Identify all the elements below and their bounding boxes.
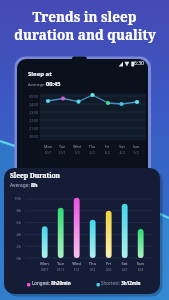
staticText: 3/2 — [101, 267, 116, 272]
staticText: Fri — [101, 261, 116, 267]
staticText: 5/2 — [133, 267, 148, 272]
staticText: 6h — [8, 220, 21, 225]
staticText: Wed — [70, 144, 84, 149]
staticText: 6:30 — [134, 60, 144, 67]
staticText: 24:00 — [23, 102, 38, 107]
button[interactable]: Sleep Duration — [4, 168, 160, 294]
staticText: 0h — [8, 256, 21, 261]
staticText: 8h — [8, 208, 21, 213]
staticText: Thu — [85, 144, 99, 149]
staticText: 4/2 — [117, 267, 132, 272]
staticText: 1/2 — [69, 267, 84, 272]
staticText: duration and quality — [14, 26, 156, 44]
staticText: 20:00 — [23, 134, 38, 139]
staticText: Fri — [100, 144, 114, 149]
button[interactable]: 6:30 — [17, 59, 148, 271]
staticText: 8h — [31, 181, 38, 188]
staticText: 23:00 — [23, 110, 38, 115]
staticText: 10h — [8, 196, 21, 201]
staticText: Sleep at — [28, 70, 52, 78]
staticText: Average: — [10, 182, 30, 189]
staticText: Sun — [133, 261, 148, 267]
staticText: 31/1 — [53, 267, 68, 272]
staticText: 5/2 — [129, 150, 143, 155]
staticText: Sleep Duration — [10, 171, 60, 180]
staticText: 2/2 — [85, 267, 100, 272]
staticText: Average: — [28, 81, 46, 87]
staticText: Thu — [85, 261, 100, 267]
staticText: 3/2 — [100, 150, 114, 155]
staticText: 22:00 — [23, 118, 38, 123]
staticText: Tue — [53, 261, 68, 267]
staticText: 2h — [8, 244, 21, 249]
staticText: Sat — [117, 261, 132, 267]
staticText: Tue — [55, 144, 69, 149]
staticText: 30/1 — [41, 150, 55, 155]
staticText: Wed — [69, 261, 84, 267]
staticText: Sun — [129, 144, 143, 149]
staticText: Trends in sleep — [32, 8, 137, 26]
staticText: 31/1 — [55, 150, 69, 155]
staticText: Sat — [115, 144, 129, 149]
staticText: 21:00 — [23, 126, 38, 131]
staticText: Mon — [41, 144, 55, 149]
staticText: Mon — [37, 261, 52, 267]
staticText: 2/2 — [85, 150, 99, 155]
staticText: 00:45 — [46, 80, 61, 88]
staticText: 30/1 — [37, 267, 52, 272]
staticText: Shortest: 3h12min — [101, 280, 141, 286]
staticText: 1/2 — [70, 150, 84, 155]
staticText: 4h — [8, 232, 21, 237]
staticText: 4/2 — [115, 150, 129, 155]
staticText: Longest: 8h20min — [32, 280, 71, 286]
staticText: 00:00 — [23, 94, 38, 99]
